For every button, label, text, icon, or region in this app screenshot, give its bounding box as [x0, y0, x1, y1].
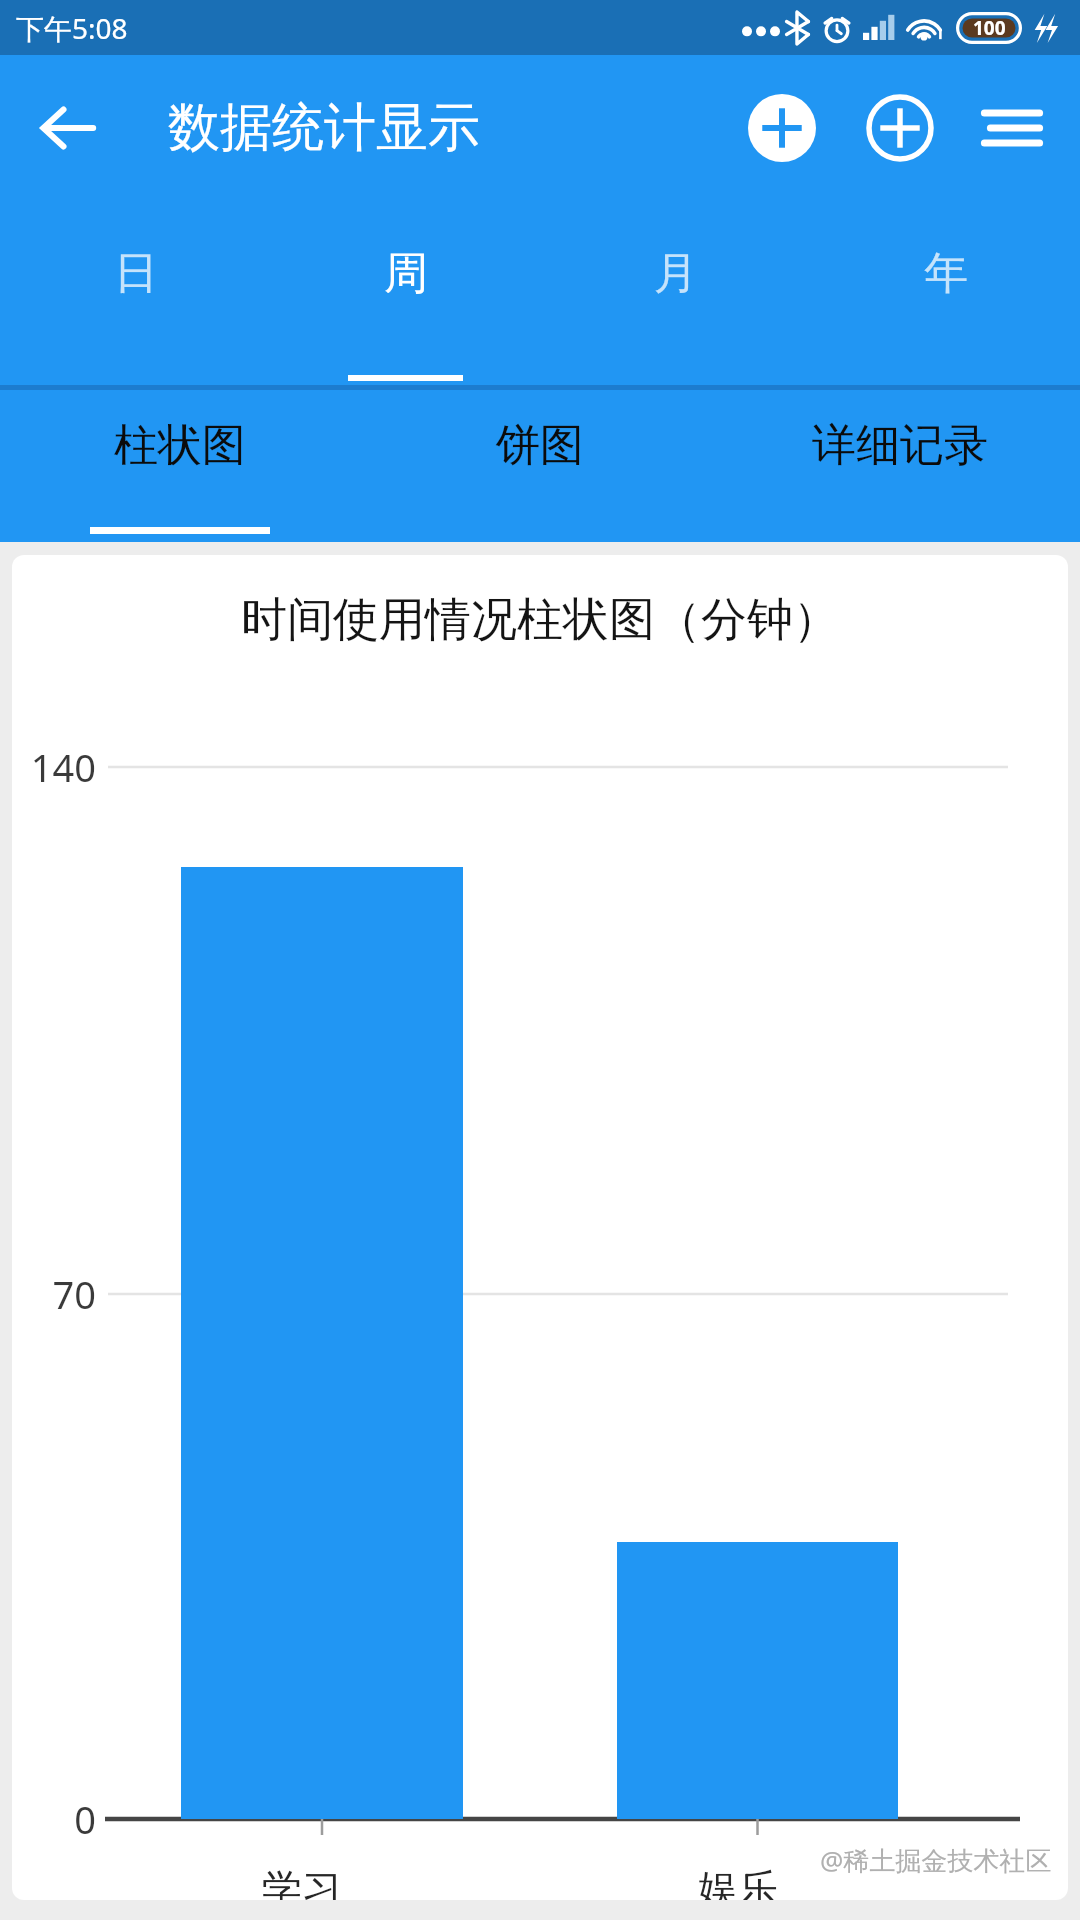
button[interactable]: 周 [270, 200, 540, 385]
button[interactable]: 详细记录 [720, 390, 1080, 542]
staticText: 月 [654, 246, 698, 301]
staticText: 详细记录 [812, 418, 988, 473]
staticText: 学习 [262, 1864, 342, 1900]
staticText: 饼图 [496, 418, 584, 473]
staticText: 数据统计显示 [168, 95, 480, 161]
staticText: 周 [384, 246, 428, 301]
staticText: @稀土掘金技术社区 [820, 1842, 1052, 1878]
staticText: 时间使用情况柱状图（分钟） [12, 591, 1068, 649]
button[interactable]: Menu [962, 78, 1062, 178]
staticText: 年 [924, 246, 968, 301]
button[interactable]: 饼图 [360, 390, 720, 542]
button[interactable]: Add new [850, 78, 950, 178]
staticText: 100 [973, 15, 1006, 41]
staticText: 娱乐 [698, 1864, 778, 1900]
staticText: 70 [52, 1268, 96, 1320]
staticText: 0 [74, 1793, 96, 1845]
button[interactable]: 日 [0, 200, 270, 385]
button[interactable]: 柱状图 [0, 390, 360, 542]
button[interactable]: 月 [540, 200, 810, 385]
staticText: 140 [30, 741, 96, 793]
button[interactable]: Back [22, 82, 114, 174]
staticText: 下午5:08 [16, 9, 128, 47]
button[interactable]: Add [732, 78, 832, 178]
button[interactable]: 年 [810, 200, 1080, 385]
staticText: 日 [114, 246, 158, 301]
staticText: 柱状图 [114, 418, 246, 473]
